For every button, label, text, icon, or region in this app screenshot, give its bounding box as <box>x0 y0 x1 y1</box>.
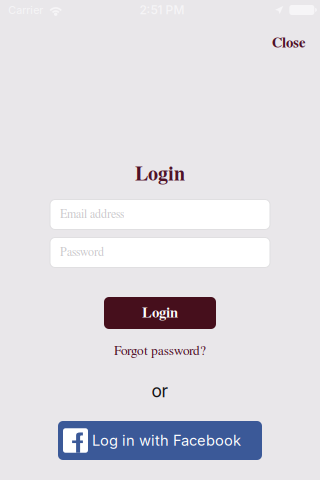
staticText: 2:51 PM <box>139 3 184 17</box>
button[interactable]: Log in with Facebook <box>58 421 262 460</box>
button[interactable]: Login <box>104 297 216 329</box>
staticText: Login <box>135 164 185 184</box>
staticText: Forgot password? <box>114 344 206 358</box>
staticText: or <box>151 380 168 401</box>
staticText: Close <box>272 36 306 50</box>
staticText: Login <box>142 306 178 320</box>
staticText: Email address <box>60 208 124 220</box>
staticText: Password <box>60 246 104 258</box>
button[interactable]: Forgot password? <box>90 340 230 362</box>
staticText: Carrier <box>8 3 43 16</box>
button[interactable]: Close <box>244 28 306 58</box>
staticText: Log in with Facebook <box>92 432 241 449</box>
